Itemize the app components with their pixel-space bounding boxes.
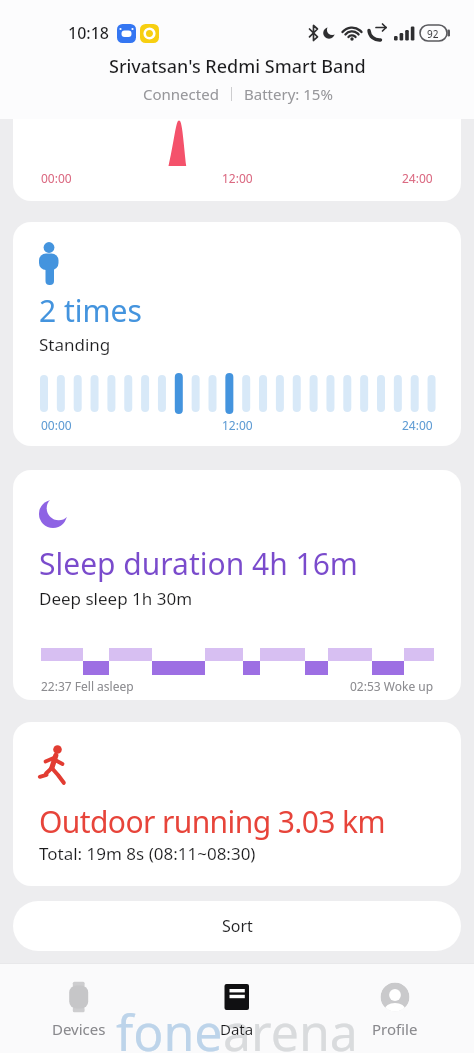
staticText: Profile [372,1019,418,1039]
staticText: Total: 19m 8s (08:11~08:30) [39,842,256,865]
staticText: Data [220,1019,254,1039]
staticText: Srivatsan's Redmi Smart Band [109,54,366,79]
staticText: Sort [222,915,253,937]
staticText: Connected [143,84,219,104]
staticText: Battery: 15% [244,84,333,104]
button[interactable]: Sort [13,901,461,951]
button[interactable]: Sleep duration 4h 16m [13,470,461,700]
staticText: Standing [39,333,111,356]
staticText: 12:00 [222,170,253,186]
button[interactable]: 2 times [13,222,461,446]
staticText: 92 [427,27,439,41]
staticText: 02:53 Woke up [350,678,434,694]
staticText: Deep sleep 1h 30m [39,587,193,610]
staticText: 00:00 [41,170,72,186]
staticText: 00:00 [41,417,72,433]
staticText: 24:00 [402,170,433,186]
button[interactable]: Devices [0,963,158,1053]
button[interactable]: Outdoor running 3.03 km [13,722,461,886]
staticText: fone [116,998,223,1053]
staticText: Outdoor running 3.03 km [39,801,385,842]
staticText: 2 times [39,290,142,331]
button[interactable]: Profile [316,963,474,1053]
staticText: 22:37 Fell asleep [41,678,134,694]
staticText: Devices [52,1019,106,1039]
button[interactable]: Data [158,963,316,1053]
button[interactable]: 00:00 [13,119,461,201]
staticText: 12:00 [222,417,253,433]
staticText: Sleep duration 4h 16m [39,543,358,584]
staticText: 10:18 [68,22,109,44]
staticText: 24:00 [402,417,433,433]
staticText: arena [223,998,358,1053]
